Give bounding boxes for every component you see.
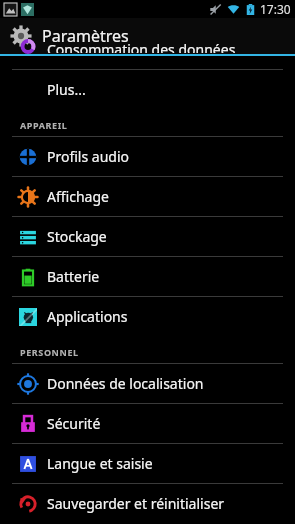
button[interactable]: Applications xyxy=(0,297,295,336)
staticText: Stockage xyxy=(47,227,107,246)
button[interactable]: Sécurité xyxy=(0,404,295,443)
button[interactable]: Langue et saisie xyxy=(0,444,295,483)
button[interactable]: Sauvegarder et réinitialiser xyxy=(0,484,295,523)
staticText: Paramètres xyxy=(42,25,129,47)
button[interactable]: Données de localisation xyxy=(0,364,295,403)
button[interactable]: Plus... xyxy=(0,70,295,109)
staticText: Applications xyxy=(47,307,128,326)
staticText: Langue et saisie xyxy=(47,454,153,473)
button[interactable]: Stockage xyxy=(0,217,295,256)
staticText: Plus... xyxy=(47,80,86,99)
staticText: APPAREIL xyxy=(20,119,68,131)
button[interactable]: Affichage xyxy=(0,177,295,216)
staticText: Sécurité xyxy=(47,414,101,433)
button[interactable]: Profils audio xyxy=(0,137,295,176)
staticText: Sauvegarder et réinitialiser xyxy=(47,494,225,513)
staticText: Données de localisation xyxy=(47,374,204,393)
staticText: Affichage xyxy=(47,187,109,206)
button[interactable]: Consommation des données xyxy=(0,40,295,53)
staticText: Consommation des données xyxy=(47,40,236,53)
staticText: PERSONNEL xyxy=(20,346,79,358)
other: Settings xyxy=(10,25,32,47)
staticText: Profils audio xyxy=(47,147,130,166)
staticText: Batterie xyxy=(47,267,100,286)
button[interactable]: Batterie xyxy=(0,257,295,296)
staticText: 17:30 xyxy=(260,1,291,17)
